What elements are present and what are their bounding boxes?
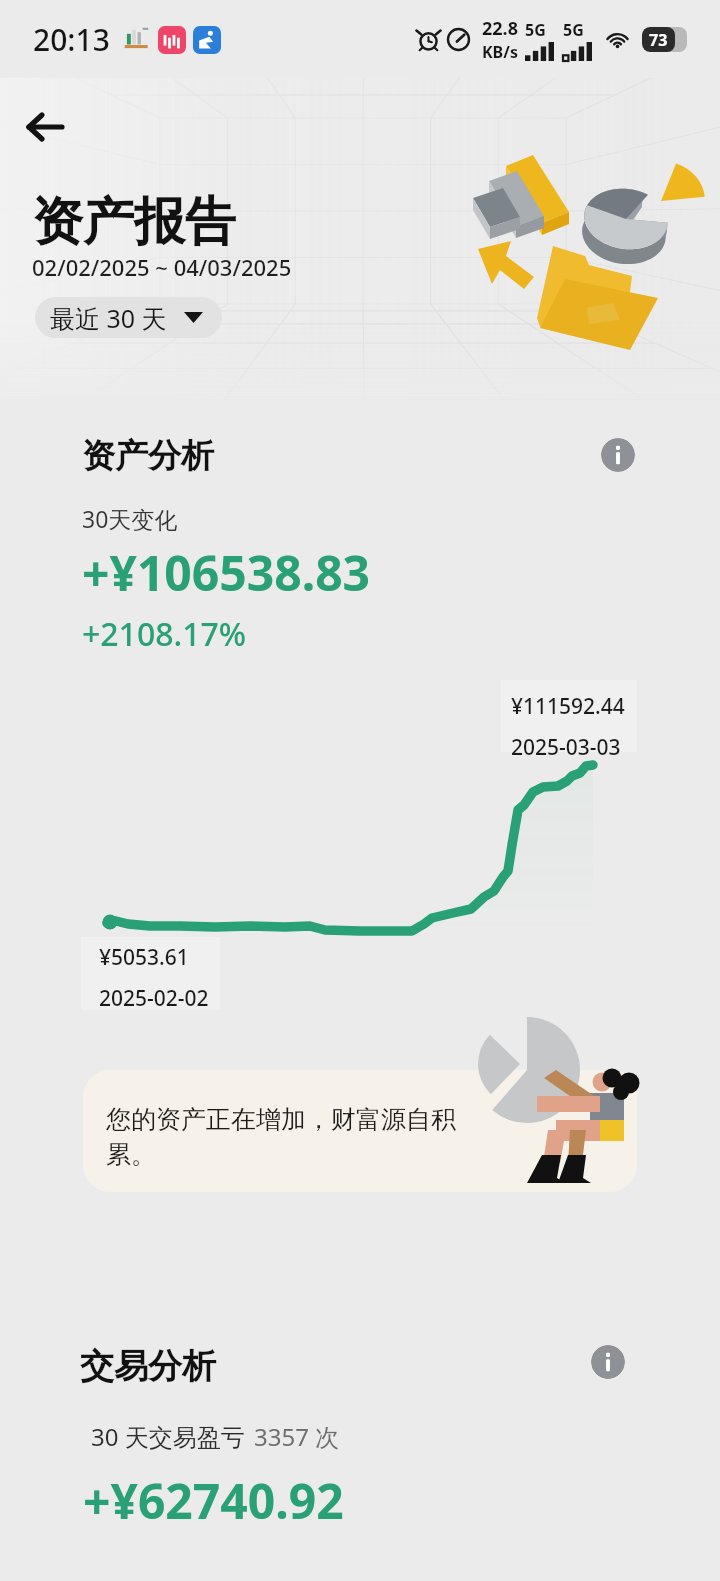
staticText: ¥5053.61 xyxy=(99,943,189,972)
button[interactable]: 您的资产正在增加，财富源自积累。 xyxy=(83,1070,637,1192)
staticText: 资产报告 xyxy=(32,190,236,254)
staticText: 最近 30 天 xyxy=(50,301,167,335)
staticText: 资产分析 xyxy=(82,435,214,477)
staticText: 您的资产正在增加，财富源自积累。 xyxy=(106,1104,471,1171)
staticText: 22.8 xyxy=(482,16,518,41)
staticText: 73 xyxy=(649,29,668,51)
staticText: +2108.17% xyxy=(82,612,247,656)
button[interactable]: Info xyxy=(601,438,635,472)
staticText: +¥106538.83 xyxy=(82,540,371,605)
button[interactable]: Back xyxy=(17,98,75,156)
button[interactable]: Info xyxy=(591,1345,625,1379)
button[interactable]: 最近 30 天 xyxy=(35,297,222,338)
staticText: KB/s xyxy=(482,41,518,63)
staticText: 20:13 xyxy=(33,19,110,60)
staticText: 交易分析 xyxy=(80,1345,216,1388)
staticText: 5G xyxy=(563,19,584,41)
staticText: 3357 次 xyxy=(254,1420,340,1453)
staticText: 2025-03-03 xyxy=(511,733,621,762)
staticText: 30天变化 xyxy=(82,503,178,534)
staticText: 30 天交易盈亏 xyxy=(91,1420,245,1453)
staticText: 2025-02-02 xyxy=(99,984,209,1013)
staticText: 5G xyxy=(525,19,546,41)
staticText: ¥111592.44 xyxy=(511,692,625,721)
staticText: 02/02/2025 ~ 04/03/2025 xyxy=(32,252,292,282)
staticText: +¥62740.92 xyxy=(83,1468,344,1533)
